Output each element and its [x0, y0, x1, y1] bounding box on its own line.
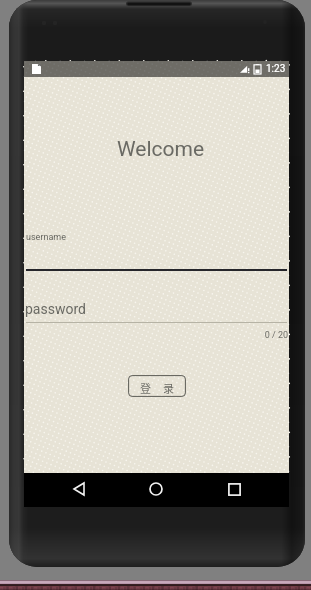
staticText: password	[25, 301, 86, 317]
button[interactable]: Back	[65, 475, 93, 503]
button[interactable]: Home	[142, 475, 170, 503]
button[interactable]: Recent apps	[220, 475, 248, 503]
button[interactable]: 登	[128, 375, 186, 397]
staticText: 登	[140, 380, 151, 396]
staticText: 1:23	[266, 63, 286, 75]
staticText: 录	[163, 380, 174, 396]
staticText: 0 / 20	[24, 330, 288, 341]
staticText: Welcome	[28, 137, 293, 162]
staticText: username	[26, 232, 66, 243]
